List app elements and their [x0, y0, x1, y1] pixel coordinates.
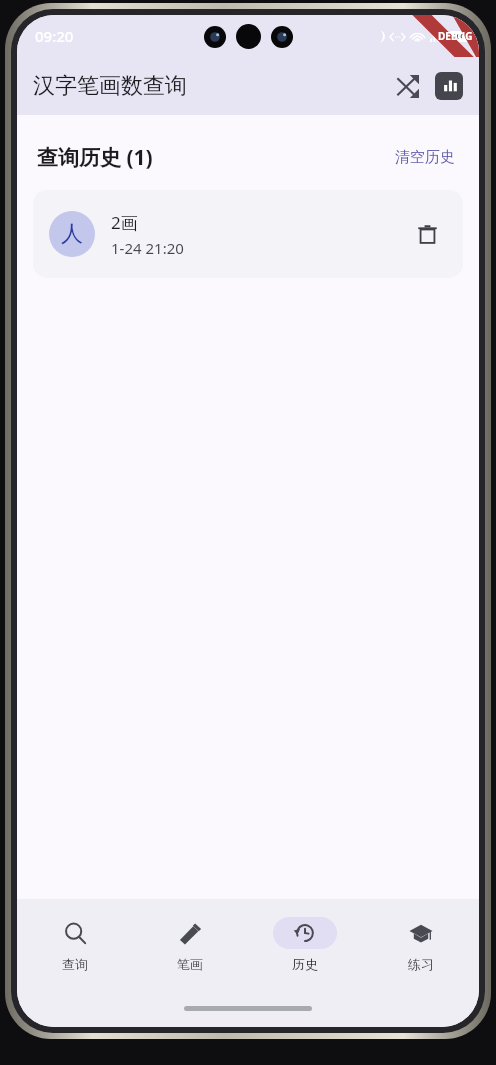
staticText: 09:20: [35, 26, 74, 46]
button[interactable]: Shuffle: [387, 66, 427, 106]
staticText: 汉字笔画数查询: [33, 72, 187, 100]
button[interactable]: 人: [33, 190, 463, 278]
staticText: 练习: [408, 956, 434, 972]
staticText: 2画: [111, 211, 138, 234]
button[interactable]: 历史: [247, 899, 363, 989]
staticText: 清空历史: [395, 148, 455, 167]
staticText: 查询: [62, 956, 88, 972]
staticText: 1-24 21:20: [111, 238, 184, 258]
button[interactable]: Delete: [407, 214, 447, 254]
button[interactable]: Statistics: [435, 72, 463, 100]
staticText: 查询历史 (1): [37, 143, 153, 172]
staticText: 历史: [292, 956, 318, 972]
button[interactable]: 查询: [17, 899, 132, 989]
button[interactable]: 练习: [363, 899, 479, 989]
staticText: 100: [453, 32, 465, 41]
staticText: DEBUG: [438, 29, 473, 43]
staticText: 人: [61, 220, 83, 248]
button[interactable]: 笔画: [132, 899, 247, 989]
button[interactable]: 清空历史: [391, 144, 459, 171]
staticText: 笔画: [177, 956, 203, 972]
